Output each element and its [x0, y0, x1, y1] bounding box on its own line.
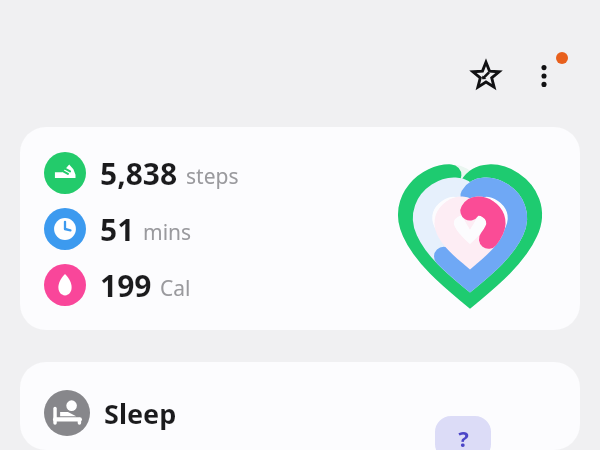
button[interactable]: Help: [435, 416, 491, 450]
staticText: Sleep: [104, 395, 177, 432]
button[interactable]: 5,838: [20, 127, 580, 330]
staticText: Cal: [160, 274, 191, 303]
staticText: 199: [100, 265, 152, 306]
staticText: 5,838: [100, 153, 178, 194]
button[interactable]: More options: [520, 52, 568, 100]
staticText: steps: [186, 162, 239, 191]
staticText: mins: [143, 218, 192, 247]
staticText: 51: [100, 209, 135, 250]
button[interactable]: Favorite: [462, 52, 510, 100]
staticText: ?: [458, 423, 469, 450]
button[interactable]: Sleep: [20, 362, 580, 450]
